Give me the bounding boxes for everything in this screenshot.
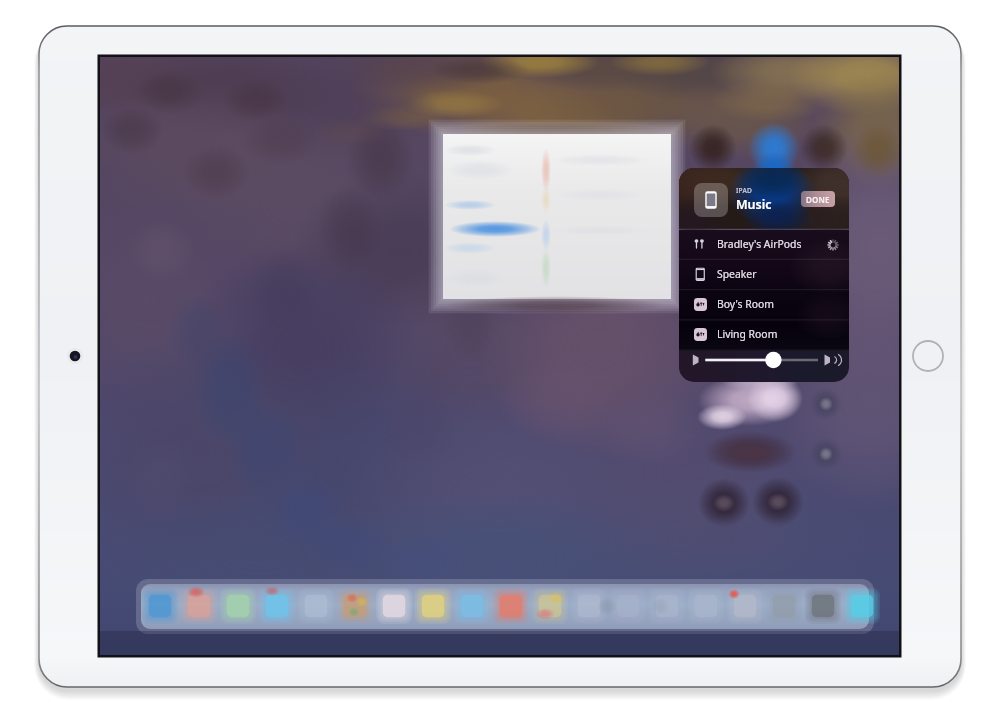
button[interactable]: Living Room: [679, 319, 849, 349]
button[interactable]: iPad: [694, 183, 728, 217]
button[interactable]: Volume: [679, 349, 849, 380]
staticText: DONE: [806, 194, 830, 205]
button[interactable]: Speaker: [679, 259, 849, 289]
staticText: Boy's Room: [717, 297, 775, 311]
staticText: Bradley's AirPods: [717, 237, 802, 251]
button[interactable]: Bradley's AirPods: [679, 229, 849, 259]
staticText: IPAD: [736, 186, 752, 195]
staticText: Music: [736, 196, 772, 213]
button[interactable]: DONE: [801, 191, 835, 207]
other: Connecting: [827, 239, 839, 251]
button[interactable]: Boy's Room: [679, 289, 849, 319]
staticText: Speaker: [717, 267, 757, 281]
staticText: Living Room: [717, 327, 778, 341]
